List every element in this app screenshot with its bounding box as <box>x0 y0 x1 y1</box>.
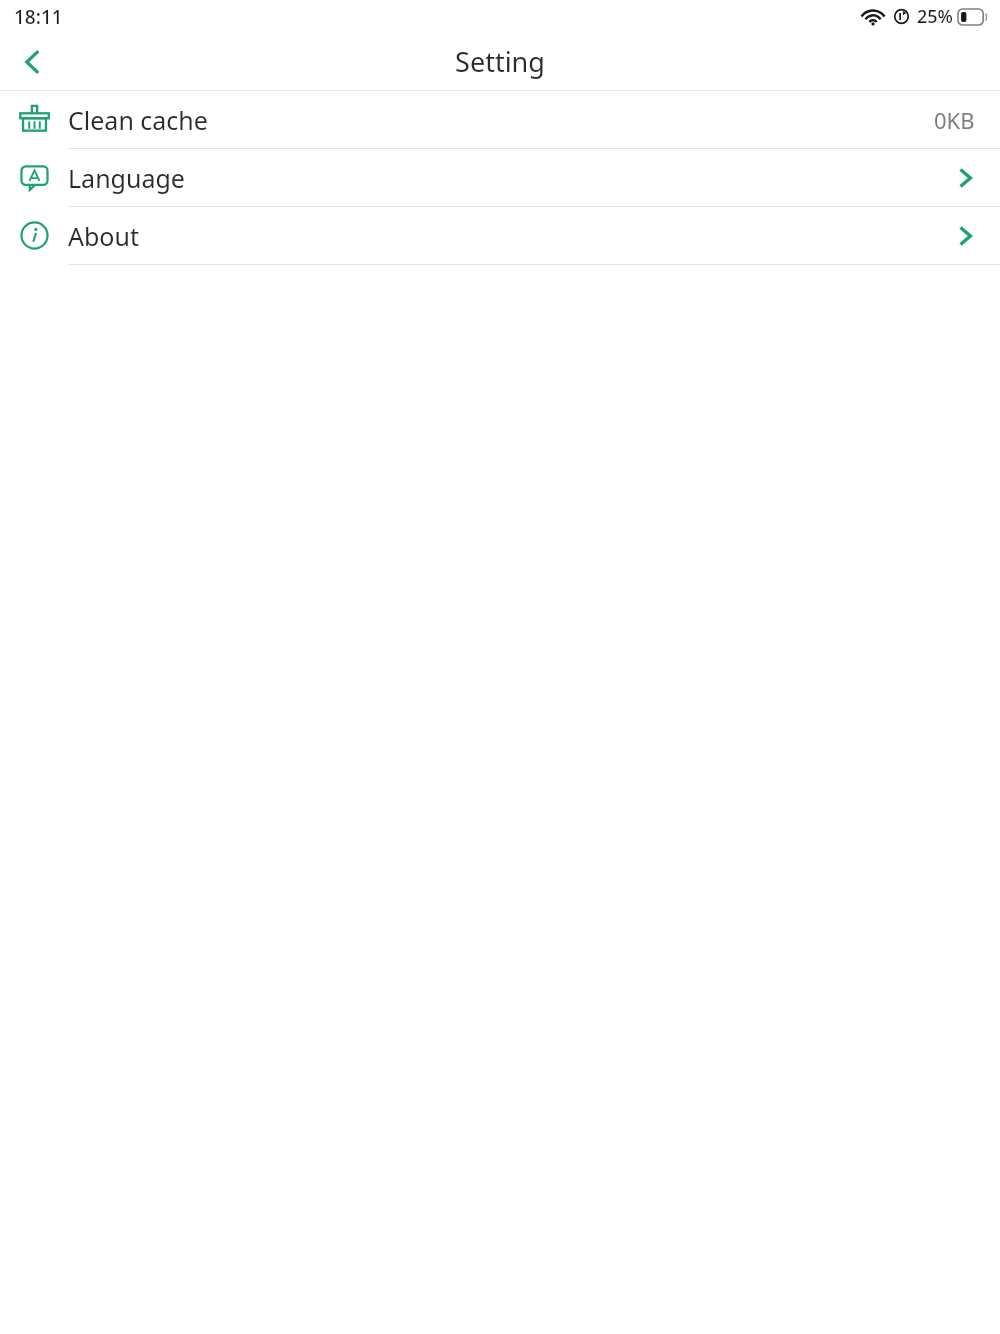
button[interactable]: Clean cache <box>0 91 1000 148</box>
staticText: Language <box>68 161 185 195</box>
button[interactable]: Language <box>0 149 1000 206</box>
button[interactable]: About <box>0 207 1000 264</box>
staticText: 0KB <box>934 105 975 135</box>
staticText: 18:11 <box>14 4 63 30</box>
button[interactable]: Back <box>0 33 66 90</box>
staticText: Clean cache <box>68 103 208 137</box>
staticText: Setting <box>455 43 545 80</box>
staticText: 25% <box>917 4 953 29</box>
staticText: About <box>68 219 139 253</box>
